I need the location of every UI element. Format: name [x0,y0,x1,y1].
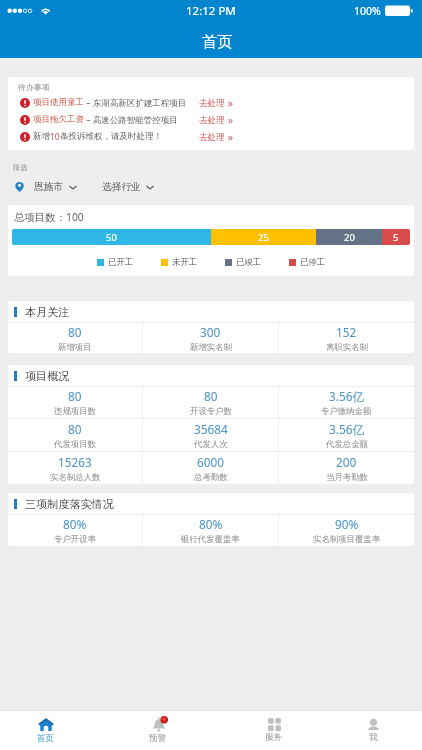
staticText: 三项制度落实情况 [25,497,114,511]
staticText: 去处理 [199,98,225,109]
staticText: 去处理 [199,115,225,126]
staticText: 专户开设率 [54,534,96,545]
staticText: 代发项目数 [54,439,96,450]
button[interactable]: 服务 [224,711,324,750]
staticText: 专户缴纳金额 [321,406,372,417]
staticText: 12:12 PM [186,3,236,19]
button[interactable]: 80 [8,387,142,418]
staticText: 项目概况 [25,369,70,383]
staticText: 300 [200,324,221,340]
button[interactable]: 35684 [143,419,278,451]
staticText: 去处理 [199,132,225,143]
staticText: 5 [393,231,399,244]
staticText: 总考勤数 [194,472,228,483]
staticText: 开设专户数 [190,406,232,417]
staticText: 80% [199,516,223,532]
button[interactable]: 152 [279,323,414,353]
staticText: 离职实名制 [326,342,368,353]
button[interactable]: 新增 [8,128,414,145]
staticText: 10 [50,131,60,143]
staticText: 总项目数：100 [14,210,84,224]
button[interactable]: 80 [8,419,142,451]
staticText: 80 [68,324,82,340]
staticText: 服务 [265,732,283,743]
staticText: » [225,96,234,110]
button[interactable]: 80% [143,515,278,546]
button[interactable]: 90% [279,515,414,546]
button[interactable]: 首页 [0,711,92,750]
staticText: 筛选 [13,163,28,172]
staticText: 6000 [197,454,224,470]
staticText: 80 [204,388,218,404]
button[interactable]: 项目拖欠工资 [8,111,414,128]
staticText: 首页 [37,733,55,744]
staticText: 恩施市 [34,181,64,193]
button[interactable]: 项目使用童工 [8,94,414,111]
staticText: 项目拖欠工资 [33,114,84,125]
staticText: 当月考勤数 [326,472,368,483]
staticText: 实名制项目覆盖率 [313,534,381,545]
button[interactable]: 选择行业 [102,177,154,197]
staticText: 新增实名制 [190,342,232,353]
button[interactable]: 15263 [8,452,142,484]
staticText: 待办事项 [18,82,50,92]
staticText: 25 [258,231,269,244]
button[interactable]: 我 [324,711,422,750]
staticText: 新增 [33,131,50,142]
staticText: 152 [336,324,357,340]
staticText: 选择行业 [102,181,141,193]
staticText: 3.56亿 [329,388,365,404]
button[interactable]: 3.56亿 [279,419,414,451]
staticText: 已开工 [108,257,134,268]
staticText: 代发总金额 [326,439,368,450]
staticText: 3.56亿 [329,421,365,437]
staticText: 35684 [194,421,228,437]
staticText: 100% [354,4,381,18]
staticText: 项目使用童工 [33,97,84,108]
staticText: 80 [68,421,82,437]
staticText: 违规项目数 [54,406,96,417]
staticText: 银行代发覆盖率 [181,534,240,545]
staticText: 预警 [149,733,167,744]
staticText: – 高速公路智能管控项目 [84,114,178,126]
staticText: 已停工 [300,257,326,268]
button[interactable]: 预警 [92,711,224,750]
staticText: 20 [344,231,355,244]
staticText: » [225,130,234,144]
staticText: 本月关注 [25,305,70,319]
button[interactable]: 80 [8,323,142,353]
staticText: 15263 [58,454,92,470]
button[interactable]: 80 [143,387,278,418]
staticText: 80% [63,516,87,532]
staticText: 实名制总人数 [50,472,101,483]
button[interactable]: 3.56亿 [279,387,414,418]
staticText: 我 [369,732,378,743]
staticText: 已竣工 [236,257,262,268]
staticText: 新增项目 [58,342,92,353]
staticText: 80 [68,388,82,404]
button[interactable]: 300 [143,323,278,353]
staticText: – 东湖高新区扩建工程项目 [84,97,187,109]
staticText: 条投诉维权，请及时处理！ [60,131,162,142]
staticText: 首页 [202,32,233,51]
button[interactable]: 恩施市 [13,177,77,197]
button[interactable]: 200 [279,452,414,484]
staticText: 代发人次 [194,439,228,450]
staticText: 200 [336,454,357,470]
staticText: 未开工 [172,257,198,268]
staticText: » [225,113,234,127]
staticText: 50 [106,231,117,244]
button[interactable]: 80% [8,515,142,546]
button[interactable]: 6000 [143,452,278,484]
staticText: 90% [335,516,359,532]
